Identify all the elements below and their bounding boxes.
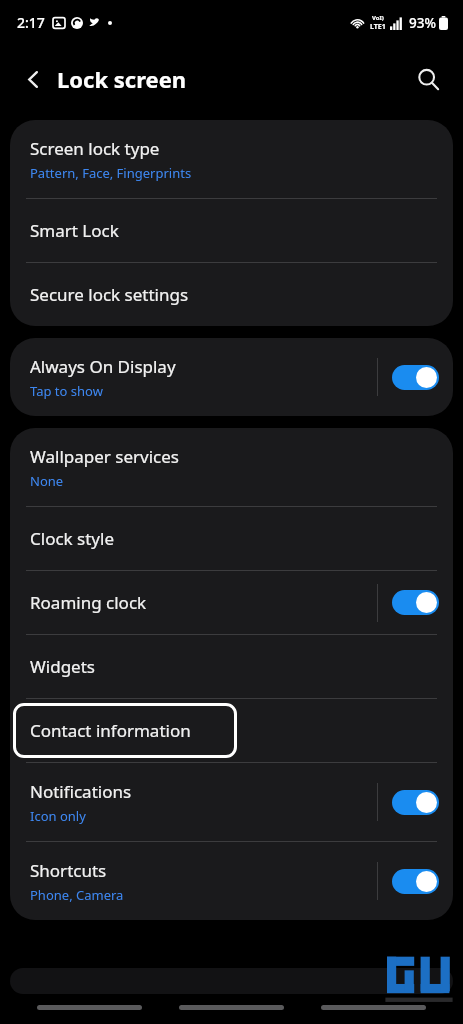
button[interactable]: Back bbox=[12, 58, 54, 100]
button[interactable]: Always On Display bbox=[10, 338, 453, 416]
staticText: Contact information bbox=[30, 719, 191, 742]
button[interactable]: Always On Display toggle bbox=[378, 338, 453, 416]
staticText: Shortcuts bbox=[30, 859, 107, 882]
staticText: Pattern, Face, Fingerprints bbox=[30, 164, 192, 182]
staticText: Screen lock type bbox=[30, 137, 160, 160]
button[interactable]: Roaming clock bbox=[10, 571, 453, 634]
staticText: Smart Lock bbox=[30, 219, 119, 242]
staticText: Notifications bbox=[30, 780, 132, 803]
staticText: VoI) bbox=[372, 14, 384, 22]
staticText: Roaming clock bbox=[30, 591, 147, 614]
button[interactable]: Navigation button bbox=[37, 1005, 142, 1010]
button[interactable]: Shortcuts bbox=[10, 842, 453, 920]
button[interactable]: Smart Lock bbox=[10, 199, 453, 262]
button[interactable]: Notifications toggle bbox=[378, 763, 453, 841]
button[interactable]: Widgets bbox=[10, 635, 453, 698]
staticText: 93% bbox=[409, 14, 436, 32]
staticText: Always On Display bbox=[30, 355, 176, 378]
staticText: Clock style bbox=[30, 527, 114, 550]
staticText: Secure lock settings bbox=[30, 283, 189, 306]
button[interactable]: Roaming clock toggle bbox=[378, 571, 453, 634]
button[interactable]: Shortcuts toggle bbox=[378, 842, 453, 920]
staticText: LTE1 bbox=[370, 22, 386, 32]
staticText: Widgets bbox=[30, 655, 95, 678]
button[interactable]: Secure lock settings bbox=[10, 263, 453, 326]
button[interactable]: Search bbox=[405, 56, 451, 102]
staticText: Tap to show bbox=[30, 382, 103, 400]
staticText: Lock screen bbox=[57, 64, 187, 94]
button[interactable]: Screen lock type bbox=[10, 120, 453, 198]
staticText: Phone, Camera bbox=[30, 886, 124, 904]
button[interactable]: Clock style bbox=[10, 507, 453, 570]
button[interactable]: Wallpaper services bbox=[10, 428, 453, 506]
button[interactable]: Navigation button bbox=[321, 1005, 426, 1010]
staticText: Icon only bbox=[30, 807, 86, 825]
button[interactable]: Notifications bbox=[10, 763, 453, 841]
staticText: 2:17 bbox=[17, 13, 45, 32]
staticText: None bbox=[30, 472, 64, 490]
button[interactable]: Contact information bbox=[10, 699, 453, 762]
button[interactable]: Navigation button bbox=[179, 1005, 284, 1010]
staticText: Wallpaper services bbox=[30, 445, 179, 468]
